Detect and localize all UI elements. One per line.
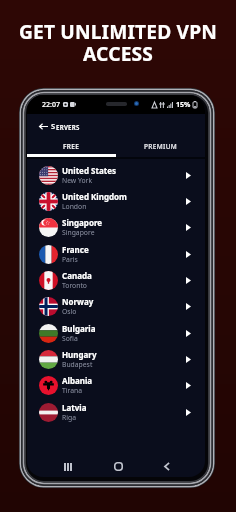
staticText: Oslo [62, 307, 77, 316]
button[interactable]: PREMIUM [116, 138, 205, 154]
staticText: Norway [62, 296, 94, 307]
staticText: New York [62, 176, 93, 185]
staticText: FREE [63, 142, 80, 151]
staticText: Sofia [62, 334, 78, 343]
staticText: ERVERS [56, 123, 80, 131]
button[interactable]: Albania [27, 372, 205, 398]
staticText: Riga [62, 413, 76, 422]
staticText: Albania [62, 375, 93, 386]
button[interactable]: United Kingdom [27, 188, 205, 214]
button[interactable]: FREE [27, 138, 116, 154]
staticText: Singapore [62, 228, 95, 237]
staticText: Singapore [62, 217, 103, 228]
button[interactable]: Singapore [27, 214, 205, 240]
button[interactable]: Back [36, 119, 50, 133]
button[interactable]: Bulgaria [27, 320, 205, 346]
staticText: United States [62, 165, 116, 176]
staticText: 15% [176, 100, 191, 110]
staticText: 22:07 [42, 100, 60, 110]
staticText: Budapest [62, 360, 93, 369]
button[interactable]: Canada [27, 267, 205, 293]
button[interactable]: Home [108, 458, 128, 475]
button[interactable]: Back [157, 458, 177, 475]
button[interactable]: United States [27, 162, 205, 188]
button[interactable]: Latvia [27, 399, 205, 425]
staticText: PREMIUM [144, 142, 178, 151]
staticText: Tirana [62, 386, 83, 395]
staticText: London [62, 202, 87, 211]
button[interactable]: France [27, 241, 205, 267]
staticText: Hungary [62, 349, 97, 360]
staticText: Bulgaria [62, 323, 96, 334]
staticText: Latvia [62, 402, 87, 413]
staticText: France [62, 244, 89, 255]
staticText: Canada [62, 270, 92, 281]
staticText: GET UNLIMITED VPN ACCESS [19, 18, 217, 67]
staticText: S [51, 121, 56, 131]
staticText: Toronto [62, 281, 87, 290]
staticText: United Kingdom [62, 191, 127, 202]
button[interactable]: Hungary [27, 346, 205, 372]
button[interactable]: Recent apps [58, 458, 78, 475]
button[interactable]: Norway [27, 293, 205, 319]
staticText: Paris [62, 255, 78, 264]
